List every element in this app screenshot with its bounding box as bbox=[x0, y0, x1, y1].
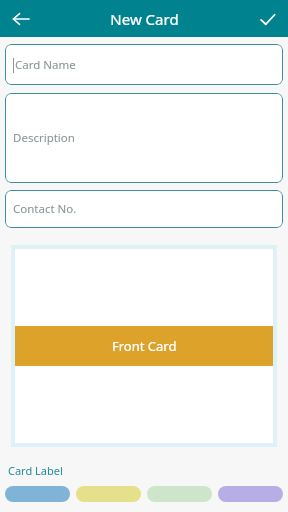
button[interactable]: Card label colour bbox=[218, 486, 283, 502]
staticText: New Card bbox=[110, 9, 179, 29]
button[interactable]: Card label colour bbox=[76, 486, 141, 502]
staticText: Description bbox=[13, 130, 75, 146]
staticText: Card Name bbox=[15, 57, 76, 73]
staticText: Card Label bbox=[8, 463, 63, 478]
button[interactable]: Card label colour bbox=[5, 486, 70, 502]
button[interactable]: Description bbox=[5, 93, 283, 183]
staticText: Contact No. bbox=[13, 201, 77, 217]
button[interactable]: Card label colour bbox=[147, 486, 212, 502]
button[interactable]: Front Card bbox=[15, 249, 273, 443]
staticText: Front Card bbox=[112, 337, 177, 355]
button[interactable]: Card Name bbox=[5, 44, 283, 85]
button[interactable]: Back bbox=[6, 4, 36, 34]
button[interactable]: Contact No. bbox=[5, 190, 283, 228]
button[interactable]: Save bbox=[252, 4, 282, 34]
